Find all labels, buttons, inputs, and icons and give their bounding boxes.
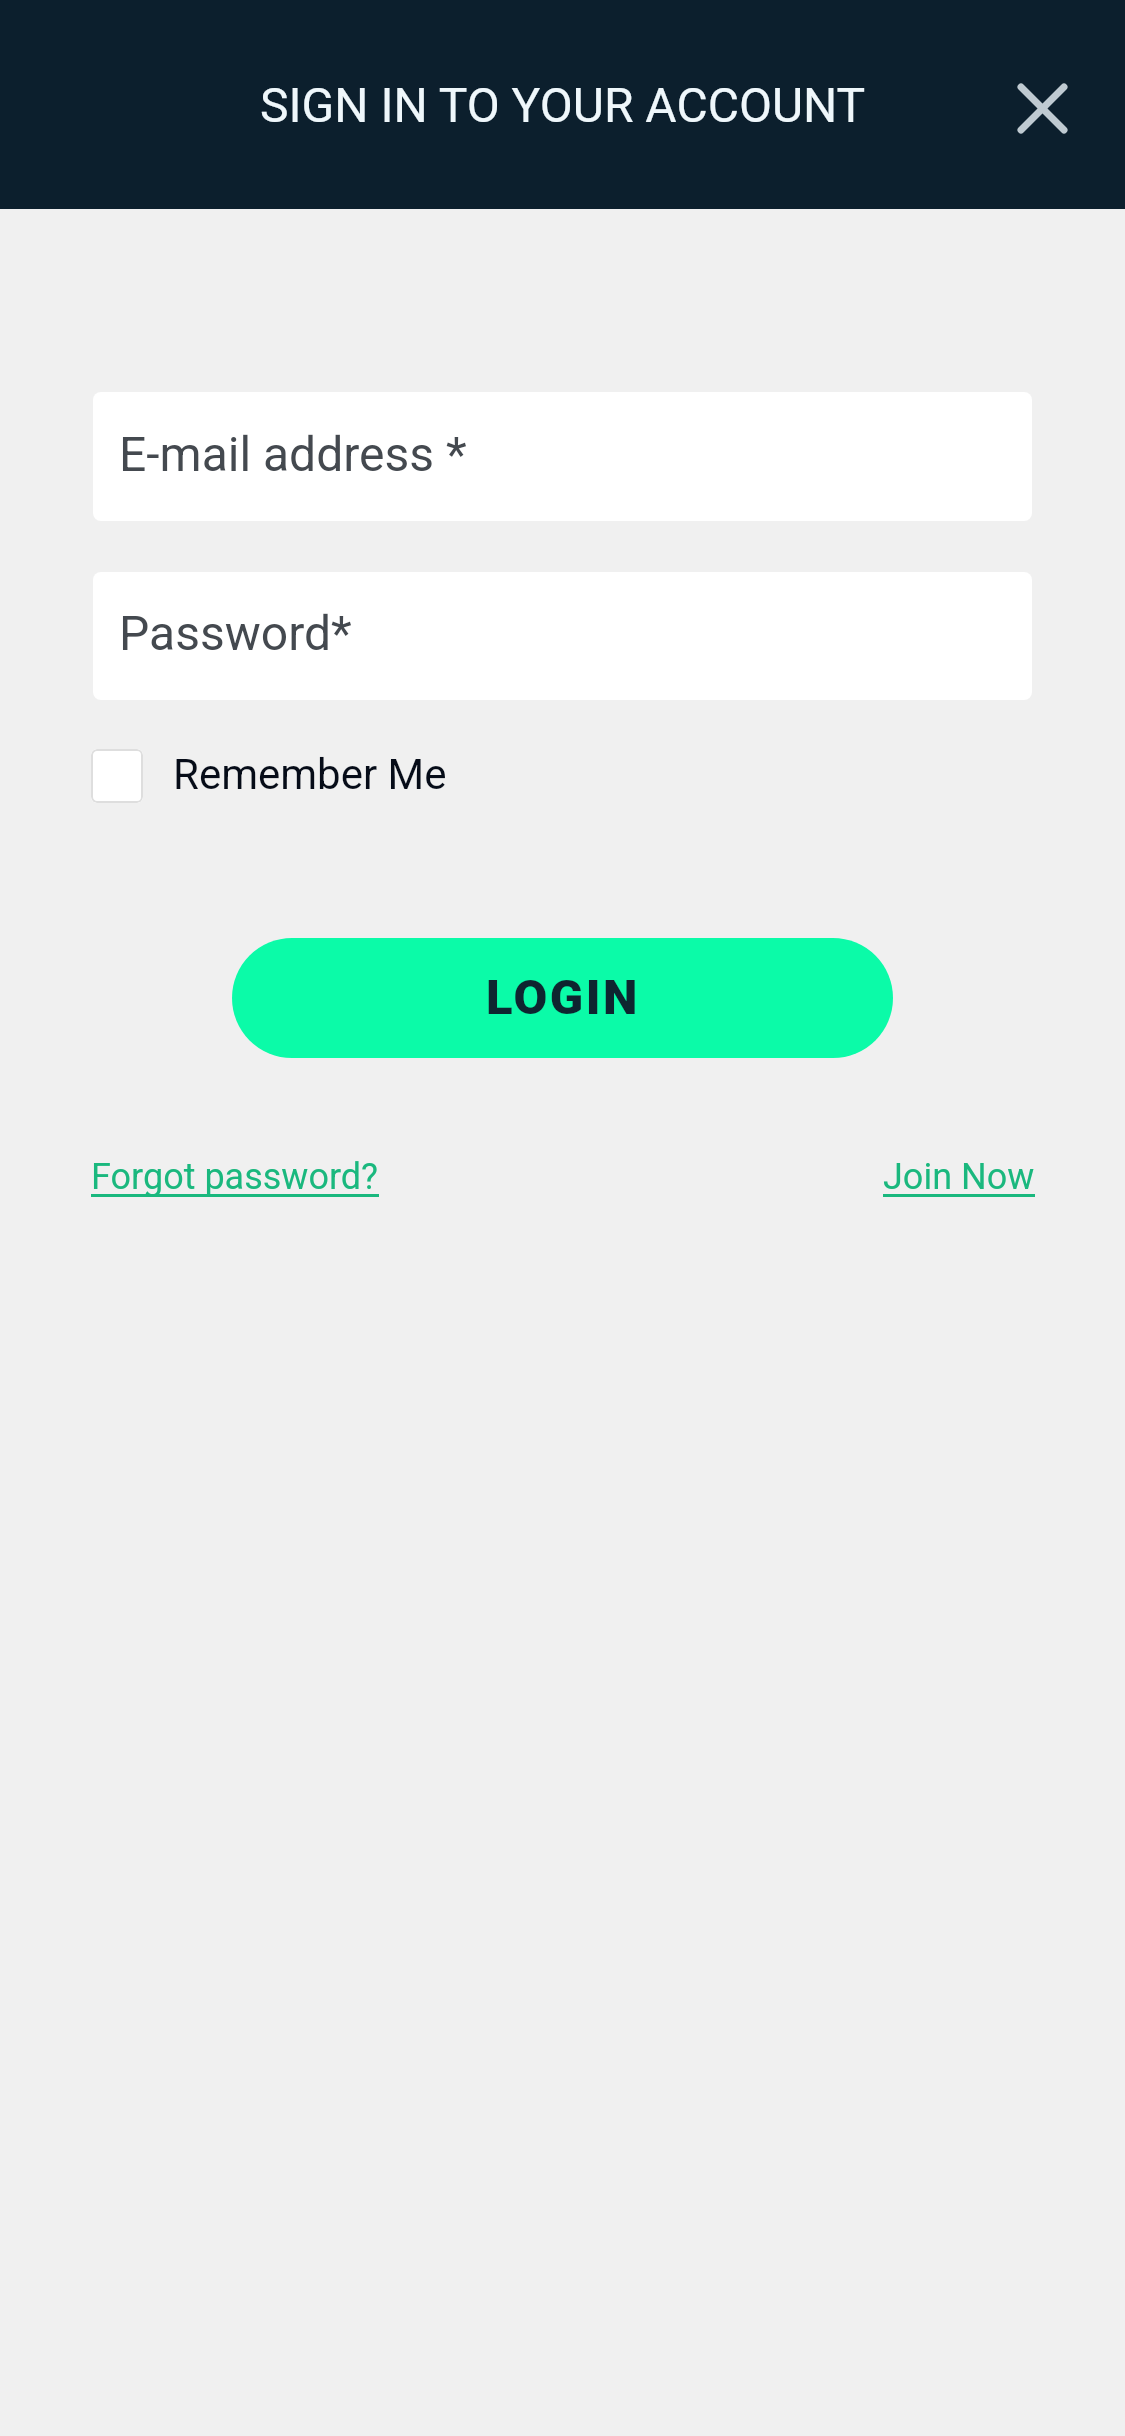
- button[interactable]: Password*: [93, 572, 1032, 700]
- button[interactable]: E-mail address *: [93, 392, 1032, 521]
- staticText: E-mail address *: [119, 426, 467, 482]
- button[interactable]: LOGIN: [232, 938, 893, 1058]
- staticText: Join Now: [883, 1156, 1035, 1198]
- button[interactable]: Join Now: [883, 1156, 1035, 1201]
- button[interactable]: Forgot password?: [91, 1156, 379, 1201]
- staticText: Remember Me: [173, 750, 447, 799]
- staticText: LOGIN: [486, 969, 640, 1026]
- staticText: Forgot password?: [91, 1156, 379, 1198]
- button[interactable]: Close: [994, 60, 1090, 156]
- staticText: Password*: [119, 605, 352, 661]
- button[interactable]: Remember Me: [91, 748, 447, 804]
- staticText: SIGN IN TO YOUR ACCOUNT: [260, 77, 866, 133]
